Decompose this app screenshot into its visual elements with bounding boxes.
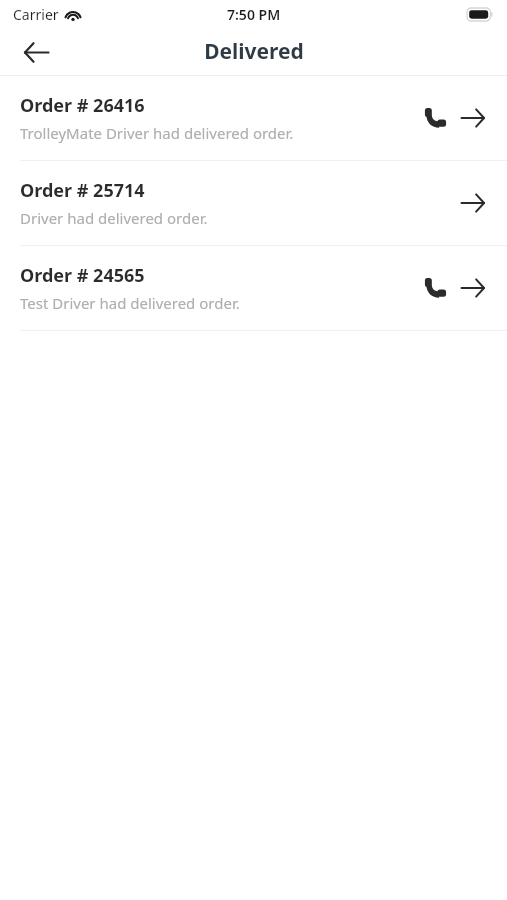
button[interactable]: Open order details [456,271,490,305]
button[interactable]: Order # 25714 [0,161,507,245]
staticText: 7:50 PM [227,5,281,24]
staticText: Driver had delivered order. [20,208,208,228]
staticText: Delivered [204,37,304,66]
button[interactable]: Open order details [456,101,490,135]
button[interactable]: Open order details [456,186,490,220]
staticText: Order # 26416 [20,93,145,118]
button[interactable]: Back [14,30,58,74]
staticText: Order # 24565 [20,263,145,288]
staticText: TrolleyMate Driver had delivered order. [20,123,294,143]
button[interactable]: Call [418,101,452,135]
button[interactable]: Order # 24565 [0,246,507,330]
staticText: Carrier [13,5,59,24]
staticText: Test Driver had delivered order. [20,293,240,313]
staticText: Order # 25714 [20,178,145,203]
button[interactable]: Call [418,271,452,305]
button[interactable]: Order # 26416 [0,76,507,160]
